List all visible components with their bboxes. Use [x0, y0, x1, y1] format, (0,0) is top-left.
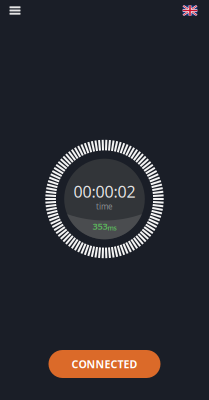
- button[interactable]: Language: [178, 0, 202, 21]
- button[interactable]: CONNECTED: [48, 350, 160, 378]
- button[interactable]: Menu: [3, 0, 27, 21]
- staticText: 00:00:02: [73, 181, 135, 202]
- staticText: 353: [92, 220, 107, 232]
- staticText: time: [96, 201, 113, 212]
- staticText: CONNECTED: [71, 357, 137, 371]
- staticText: ms: [107, 223, 116, 232]
